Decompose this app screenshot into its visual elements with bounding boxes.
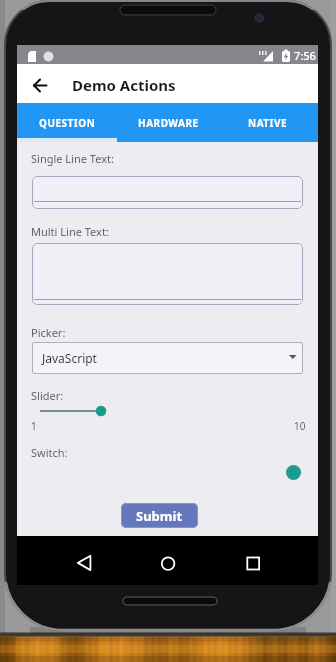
button[interactable] xyxy=(218,536,318,585)
staticText: HARDWARE xyxy=(138,116,199,130)
staticText: Demo Actions xyxy=(72,75,176,95)
staticText: Multi Line Text: xyxy=(31,224,109,239)
staticText: 7:56 xyxy=(294,48,316,63)
button[interactable] xyxy=(32,243,303,305)
staticText: JavaScript xyxy=(42,350,97,366)
button[interactable]: Submit xyxy=(121,503,198,528)
staticText: 1 xyxy=(31,419,37,433)
button[interactable] xyxy=(118,536,218,585)
button[interactable]: QUESTION xyxy=(17,103,118,142)
staticText: 10 xyxy=(294,419,306,433)
staticText: Single Line Text: xyxy=(31,151,114,166)
staticText: Switch: xyxy=(31,445,68,460)
button[interactable]: HARDWARE xyxy=(118,103,218,142)
staticText: Slider: xyxy=(31,388,64,403)
button[interactable]: NATIVE xyxy=(218,103,318,142)
staticText: Picker: xyxy=(31,325,66,340)
button[interactable] xyxy=(32,176,303,209)
staticText: NATIVE xyxy=(248,116,288,130)
button[interactable] xyxy=(23,66,59,102)
button[interactable] xyxy=(17,536,118,585)
button[interactable]: JavaScript xyxy=(32,342,303,374)
button[interactable] xyxy=(286,465,301,480)
staticText: QUESTION xyxy=(39,116,96,130)
staticText: Submit xyxy=(136,507,183,525)
